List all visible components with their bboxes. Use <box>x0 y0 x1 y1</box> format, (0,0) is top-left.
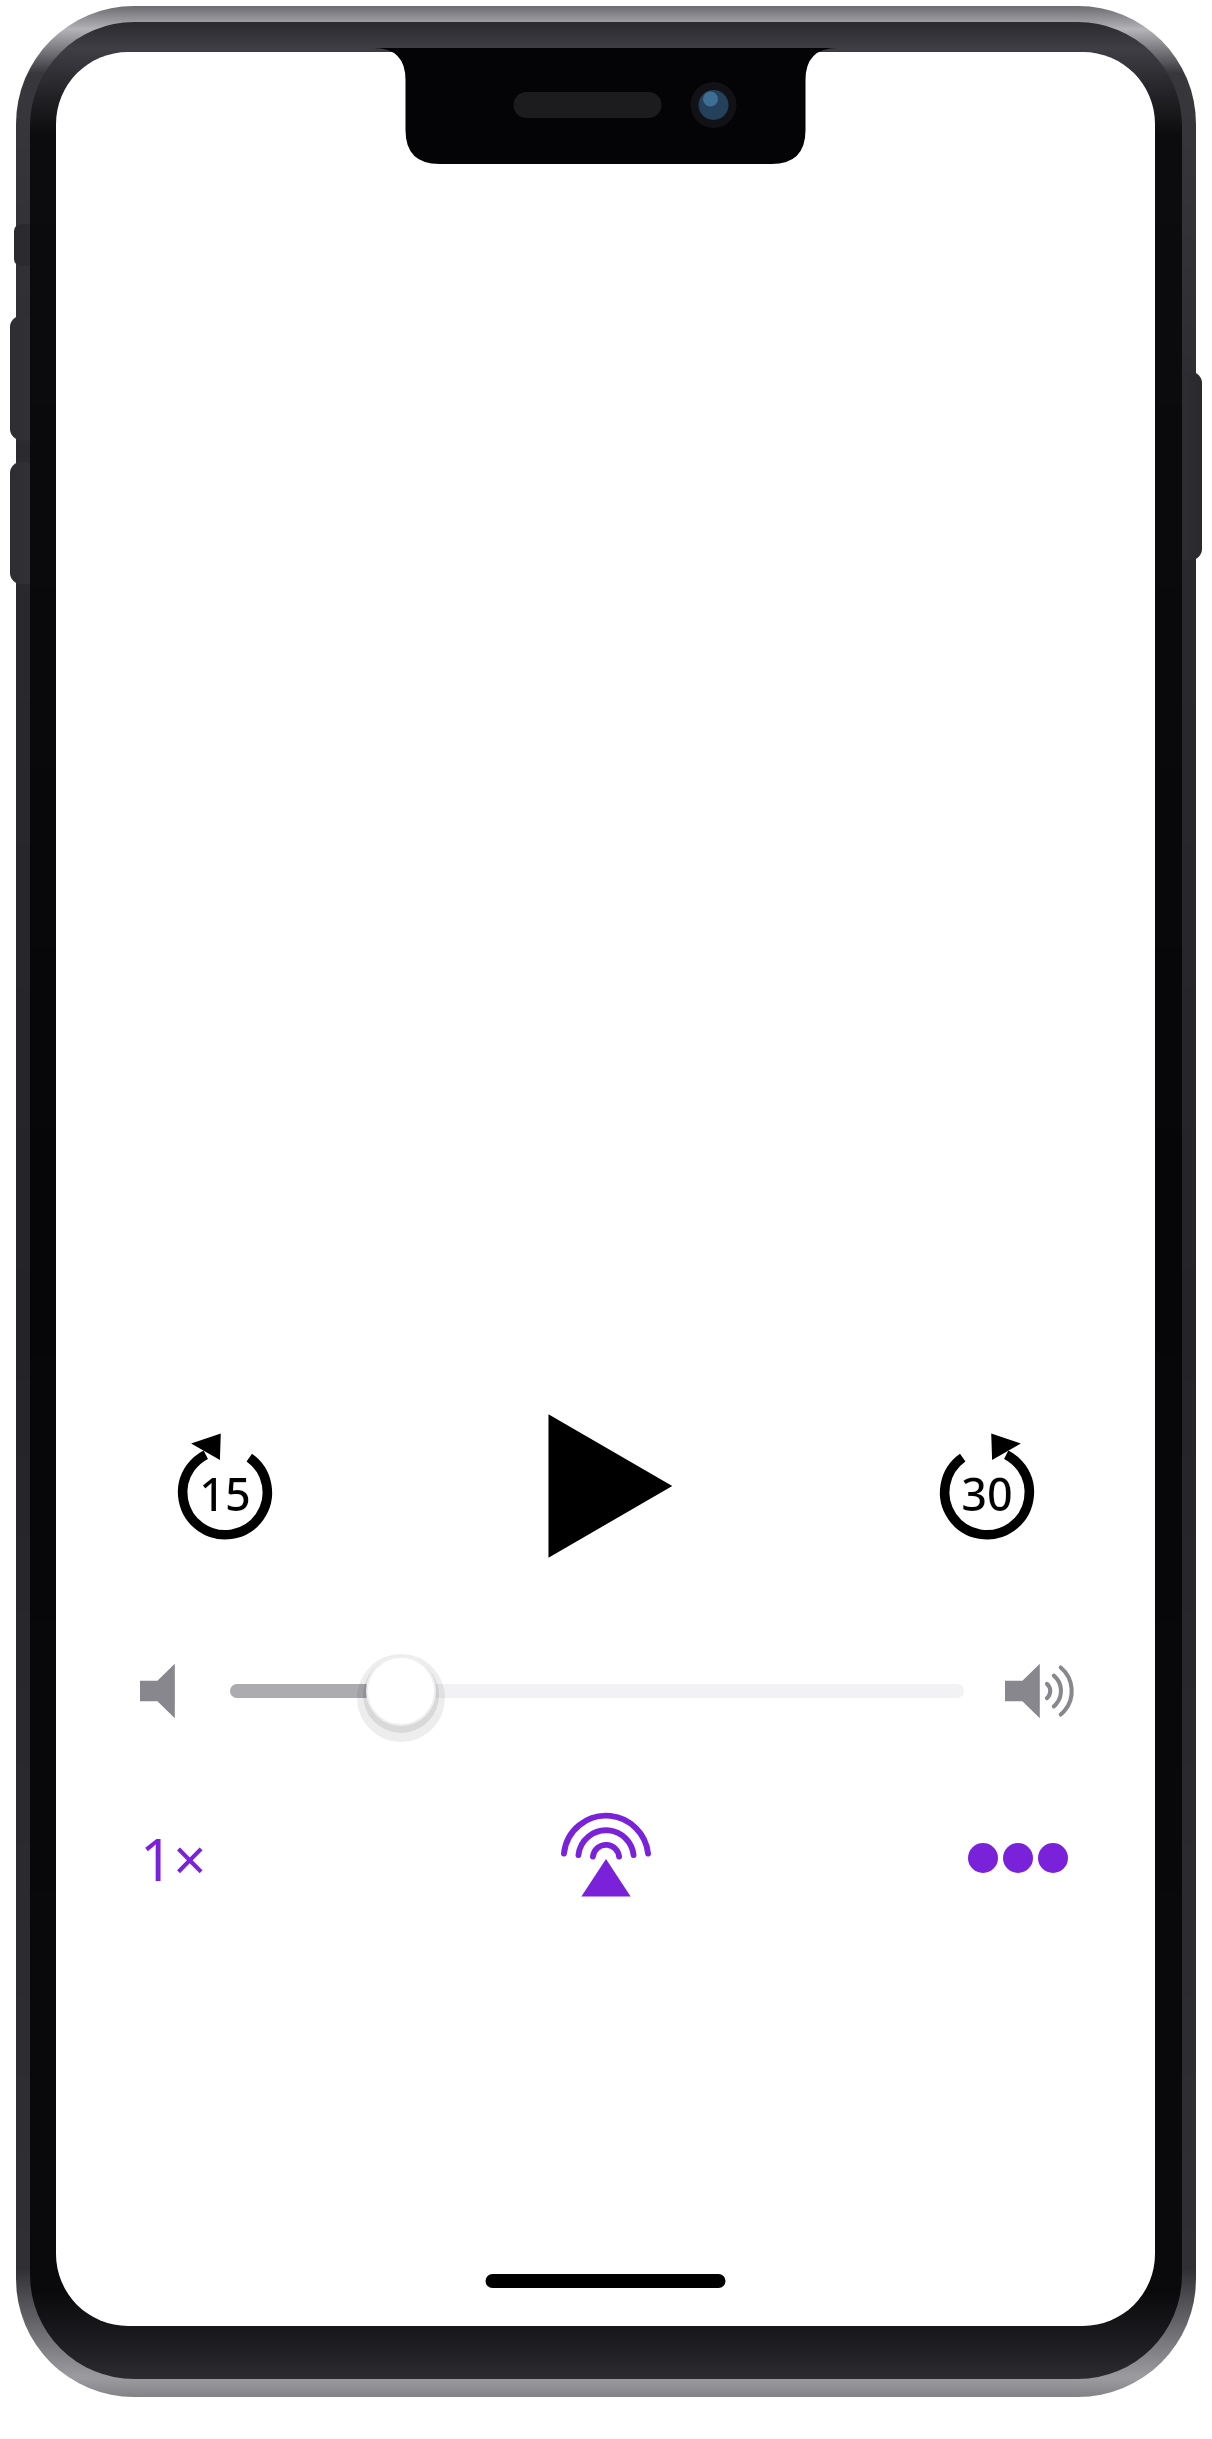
staticText: 15 <box>199 1463 251 1524</box>
button[interactable]: Maximum volume <box>998 1641 1090 1741</box>
staticText: 30 <box>961 1463 1013 1524</box>
button[interactable]: Volume <box>196 1631 998 1751</box>
button[interactable]: More options <box>946 1798 1072 1918</box>
button[interactable]: Mute <box>128 1641 196 1741</box>
button[interactable]: Skip back 15 seconds <box>150 1411 300 1561</box>
button[interactable]: Skip forward 30 seconds <box>912 1411 1062 1561</box>
staticText: 1× <box>140 1819 207 1898</box>
button[interactable]: 1× <box>140 1798 266 1918</box>
button[interactable]: Play <box>511 1398 701 1573</box>
button[interactable]: AirPlay <box>543 1798 669 1918</box>
